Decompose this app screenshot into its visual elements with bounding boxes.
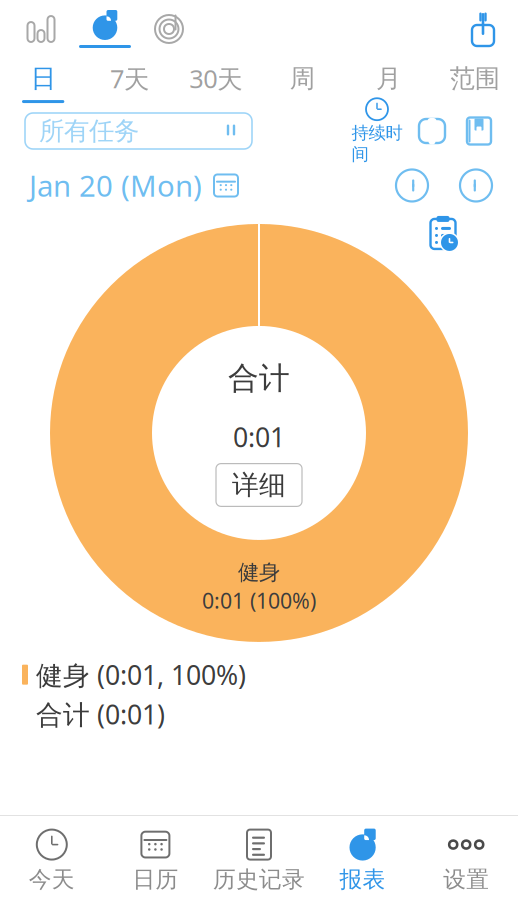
- staticText: 详细: [232, 469, 286, 501]
- button[interactable]: 7天: [86, 56, 173, 104]
- staticText: 7天: [110, 62, 149, 95]
- button[interactable]: 收藏: [408, 108, 456, 154]
- button[interactable]: 分享: [456, 5, 510, 53]
- button[interactable]: 历史记录: [207, 819, 311, 901]
- staticText: Jan 20 (Mon): [29, 166, 202, 205]
- button[interactable]: 日: [0, 57, 86, 103]
- button[interactable]: 持续时间: [346, 108, 408, 154]
- staticText: 0:01 (100%): [202, 586, 316, 615]
- staticText: 范围: [450, 63, 500, 94]
- button[interactable]: 设置: [414, 819, 518, 901]
- staticText: 历史记录: [213, 866, 305, 893]
- button[interactable]: 条形图: [10, 6, 72, 52]
- staticText: 健身 (0:01, 100%): [36, 657, 246, 692]
- button[interactable]: 详细: [216, 464, 302, 506]
- button[interactable]: 所有任务: [25, 113, 252, 149]
- staticText: 日历: [132, 866, 178, 893]
- button[interactable]: 前一天: [394, 167, 430, 203]
- button[interactable]: 任务记录: [426, 210, 468, 252]
- staticText: 周: [290, 63, 315, 94]
- staticText: 合计: [228, 359, 290, 397]
- staticText: 日: [31, 63, 56, 94]
- button[interactable]: 饼图: [72, 4, 138, 54]
- button[interactable]: 目标: [138, 6, 200, 52]
- button[interactable]: 周: [259, 57, 345, 103]
- button[interactable]: 月: [345, 57, 432, 103]
- button[interactable]: 今天: [0, 819, 104, 901]
- button[interactable]: 报表: [311, 819, 414, 901]
- staticText: 合计 (0:01): [36, 696, 165, 732]
- staticText: 30天: [189, 62, 242, 95]
- button[interactable]: 书签: [456, 108, 502, 154]
- staticText: 0:01: [233, 419, 285, 455]
- staticText: 报表: [340, 866, 386, 893]
- staticText: 所有任务: [39, 115, 139, 146]
- staticText: 今天: [29, 866, 75, 893]
- button[interactable]: 30天: [173, 56, 259, 104]
- staticText: 健身: [238, 559, 280, 585]
- staticText: 持续时间: [351, 122, 402, 165]
- button[interactable]: 后一天: [458, 167, 494, 203]
- staticText: 月: [376, 63, 401, 94]
- button[interactable]: Jan 20 (Mon): [29, 162, 239, 209]
- button[interactable]: 范围: [432, 57, 518, 103]
- button[interactable]: 日历: [104, 819, 207, 901]
- staticText: 设置: [443, 866, 489, 893]
